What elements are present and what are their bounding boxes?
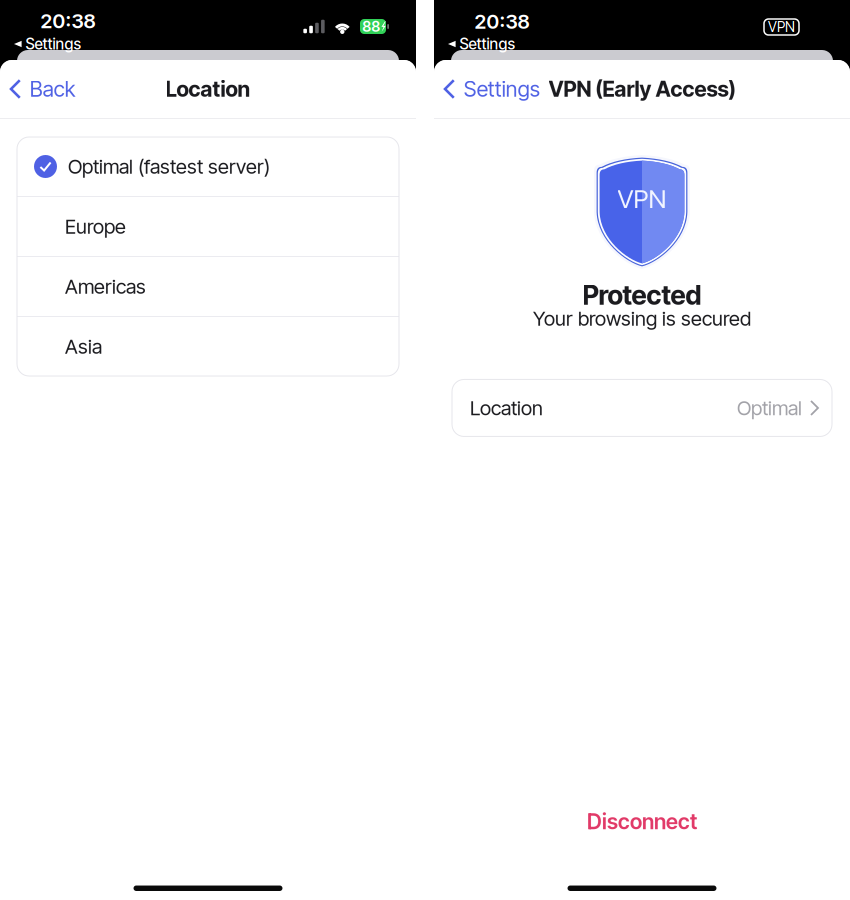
staticText: VPN — [617, 184, 666, 214]
button[interactable]: Americas — [17, 257, 399, 316]
staticText: Your browsing is secured — [533, 306, 751, 330]
button[interactable]: Asia — [17, 317, 399, 376]
button[interactable]: Back — [0, 65, 76, 113]
button[interactable]: Europe — [17, 197, 399, 256]
staticText: VPN — [768, 18, 795, 35]
staticText: Settings — [460, 35, 516, 53]
staticText: Settings — [26, 35, 82, 53]
button[interactable]: Optimal (fastest server) — [17, 137, 399, 196]
button[interactable]: Disconnect — [434, 801, 850, 841]
button[interactable]: Location — [452, 379, 832, 436]
button[interactable]: Settings — [434, 65, 540, 113]
staticText: VPN (Early Access) — [548, 76, 735, 102]
staticText: 20:38 — [474, 9, 529, 34]
staticText: Americas — [65, 274, 146, 299]
staticText: Optimal — [737, 396, 802, 420]
staticText: Europe — [65, 214, 126, 239]
staticText: 88 — [362, 18, 380, 35]
staticText: Location — [470, 396, 543, 420]
staticText: Disconnect — [587, 809, 697, 834]
staticText: 20:38 — [40, 9, 95, 33]
staticText: Optimal (fastest server) — [68, 154, 270, 179]
staticText: Location — [165, 76, 250, 102]
staticText: Asia — [65, 334, 102, 359]
staticText: Settings — [464, 76, 540, 102]
staticText: Protected — [582, 279, 701, 311]
staticText: Back — [30, 76, 76, 102]
